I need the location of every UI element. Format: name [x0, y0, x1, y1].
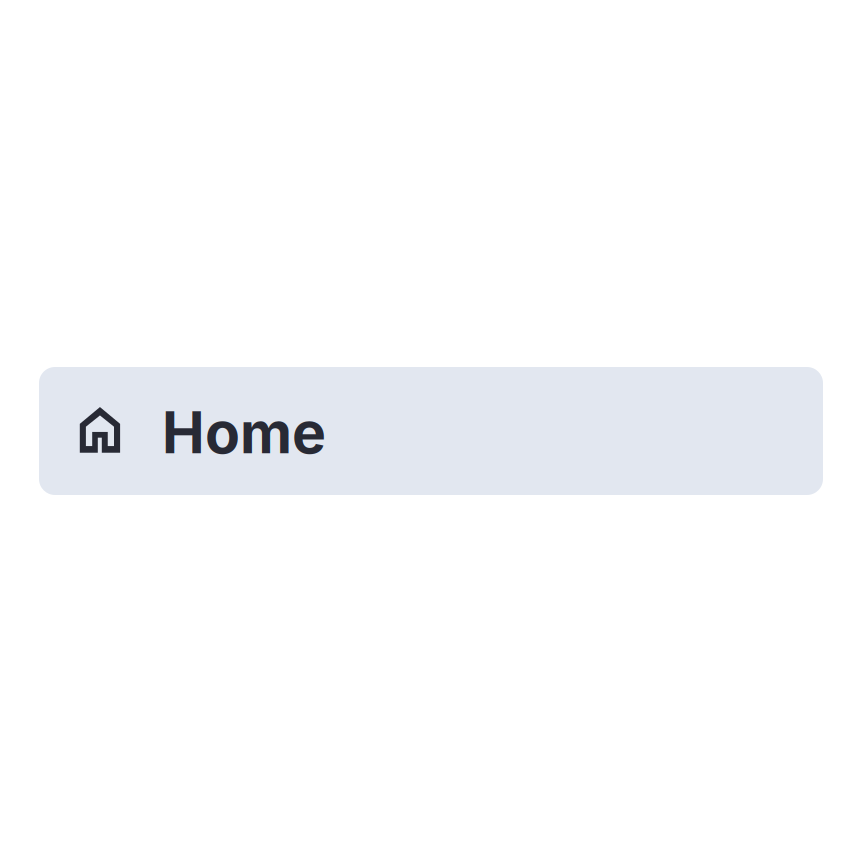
staticText: Home	[162, 398, 326, 467]
button[interactable]: Home	[39, 367, 823, 495]
